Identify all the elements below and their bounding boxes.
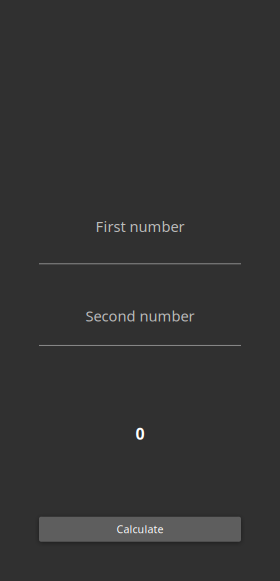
button[interactable]: Second number (39, 306, 241, 346)
staticText: Second number (85, 306, 194, 325)
staticText: First number (95, 216, 184, 236)
staticText: Calculate (116, 522, 163, 536)
button[interactable]: First number (39, 216, 241, 264)
staticText: 0 (135, 423, 144, 444)
button[interactable]: Calculate (39, 517, 241, 542)
